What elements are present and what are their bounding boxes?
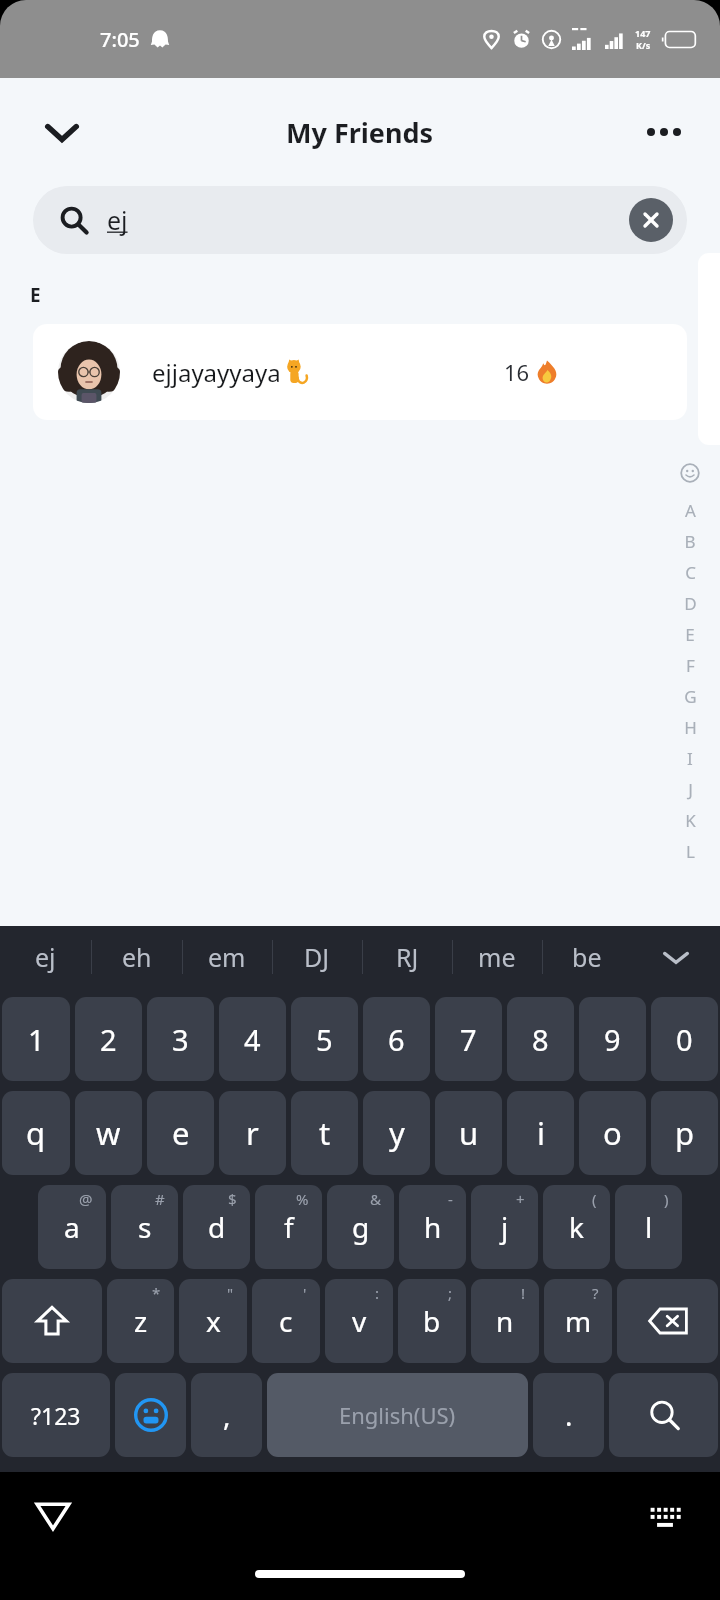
staticText: 16	[504, 357, 530, 387]
button[interactable]: em	[182, 926, 272, 988]
staticText: ej	[107, 203, 128, 237]
staticText: 6	[388, 1020, 405, 1059]
button[interactable]: ej	[33, 186, 687, 254]
button[interactable]: .	[533, 1373, 604, 1457]
button[interactable]: be	[542, 926, 632, 988]
button[interactable]: i	[507, 1091, 574, 1175]
button[interactable]: w	[75, 1091, 142, 1175]
staticText: B	[684, 530, 696, 553]
staticText: 7:05	[100, 26, 140, 53]
staticText: q	[26, 1112, 46, 1154]
button[interactable]: Shift	[2, 1279, 102, 1363]
button[interactable]: 1	[2, 997, 70, 1081]
button[interactable]: "	[179, 1279, 247, 1363]
button[interactable]: 7	[435, 997, 502, 1081]
button[interactable]: ;	[398, 1279, 466, 1363]
staticText: c	[279, 1302, 293, 1340]
button[interactable]: DJ	[272, 926, 362, 988]
staticText: *	[152, 1283, 161, 1303]
staticText: 7	[460, 1020, 477, 1059]
button[interactable]: 2	[75, 997, 142, 1081]
staticText: m	[565, 1302, 592, 1340]
button[interactable]: p	[651, 1091, 718, 1175]
button[interactable]: 5	[291, 997, 358, 1081]
button[interactable]: ej	[0, 926, 91, 988]
button[interactable]: &	[327, 1185, 394, 1269]
button[interactable]: me	[452, 926, 542, 988]
button[interactable]: !	[471, 1279, 539, 1363]
button[interactable]: Emoji	[115, 1373, 186, 1457]
button[interactable]: RJ	[362, 926, 452, 988]
button[interactable]: -	[399, 1185, 466, 1269]
staticText: l	[645, 1208, 653, 1246]
button[interactable]: Collapse	[30, 100, 94, 164]
staticText: 2	[100, 1020, 117, 1059]
staticText: p	[675, 1112, 695, 1154]
button[interactable]: ?	[544, 1279, 612, 1363]
staticText: w	[96, 1112, 121, 1154]
button[interactable]: More options	[634, 102, 694, 162]
button[interactable]: q	[2, 1091, 70, 1175]
button[interactable]: y	[363, 1091, 430, 1175]
button[interactable]: (	[543, 1185, 610, 1269]
staticText: My Friends	[286, 114, 434, 151]
staticText: 3	[172, 1020, 189, 1059]
button[interactable]: Switch keyboard	[632, 1482, 698, 1548]
staticText: o	[603, 1112, 622, 1154]
button[interactable]: r	[219, 1091, 286, 1175]
staticText: a	[64, 1208, 80, 1246]
button[interactable]: )	[615, 1185, 682, 1269]
button[interactable]: *	[107, 1279, 174, 1363]
button[interactable]: t	[291, 1091, 358, 1175]
staticText: C	[685, 561, 696, 584]
button[interactable]: Clear	[629, 198, 673, 242]
staticText: (	[592, 1189, 597, 1209]
button[interactable]: :	[325, 1279, 393, 1363]
staticText: v	[352, 1302, 367, 1340]
button[interactable]: 8	[507, 997, 574, 1081]
button[interactable]: 3	[147, 997, 214, 1081]
staticText: ?123	[31, 1400, 81, 1431]
staticText: F	[686, 654, 695, 677]
staticText: @	[79, 1189, 93, 1209]
staticText: me	[478, 940, 516, 974]
staticText: ejjayayyaya	[152, 356, 281, 389]
button[interactable]: $	[183, 1185, 250, 1269]
button[interactable]: #	[111, 1185, 178, 1269]
button[interactable]: %	[255, 1185, 322, 1269]
button[interactable]: English(US)	[267, 1373, 528, 1457]
button[interactable]: eh	[91, 926, 182, 988]
staticText: r	[246, 1112, 259, 1154]
button[interactable]: Expand suggestions	[632, 926, 720, 988]
button[interactable]: +	[471, 1185, 538, 1269]
button[interactable]: Search	[609, 1373, 718, 1457]
button[interactable]: '	[252, 1279, 320, 1363]
button[interactable]: 4	[219, 997, 286, 1081]
button[interactable]: @	[38, 1185, 106, 1269]
button[interactable]: 0	[651, 997, 718, 1081]
staticText: 1	[28, 1020, 45, 1059]
staticText: 147	[635, 27, 651, 39]
button[interactable]: 9	[579, 997, 646, 1081]
button[interactable]: Backspace	[617, 1279, 718, 1363]
staticText: I	[687, 747, 693, 770]
button[interactable]: Back	[18, 1480, 88, 1550]
button[interactable]: o	[579, 1091, 646, 1175]
staticText: &	[370, 1189, 381, 1209]
button[interactable]: ejjayayyaya	[33, 324, 687, 420]
staticText: #	[155, 1189, 165, 1209]
staticText: x	[206, 1302, 221, 1340]
staticText: s	[138, 1208, 152, 1246]
staticText: DJ	[304, 940, 330, 974]
staticText: )	[664, 1189, 669, 1209]
button[interactable]: ,	[191, 1373, 262, 1457]
button[interactable]: 6	[363, 997, 430, 1081]
staticText: ej	[35, 940, 56, 974]
button[interactable]: ?123	[2, 1373, 110, 1457]
staticText: .	[565, 1396, 573, 1434]
button[interactable]: e	[147, 1091, 214, 1175]
staticText: be	[572, 940, 602, 974]
staticText: e	[172, 1112, 190, 1154]
staticText: ,	[223, 1396, 231, 1434]
button[interactable]: u	[435, 1091, 502, 1175]
